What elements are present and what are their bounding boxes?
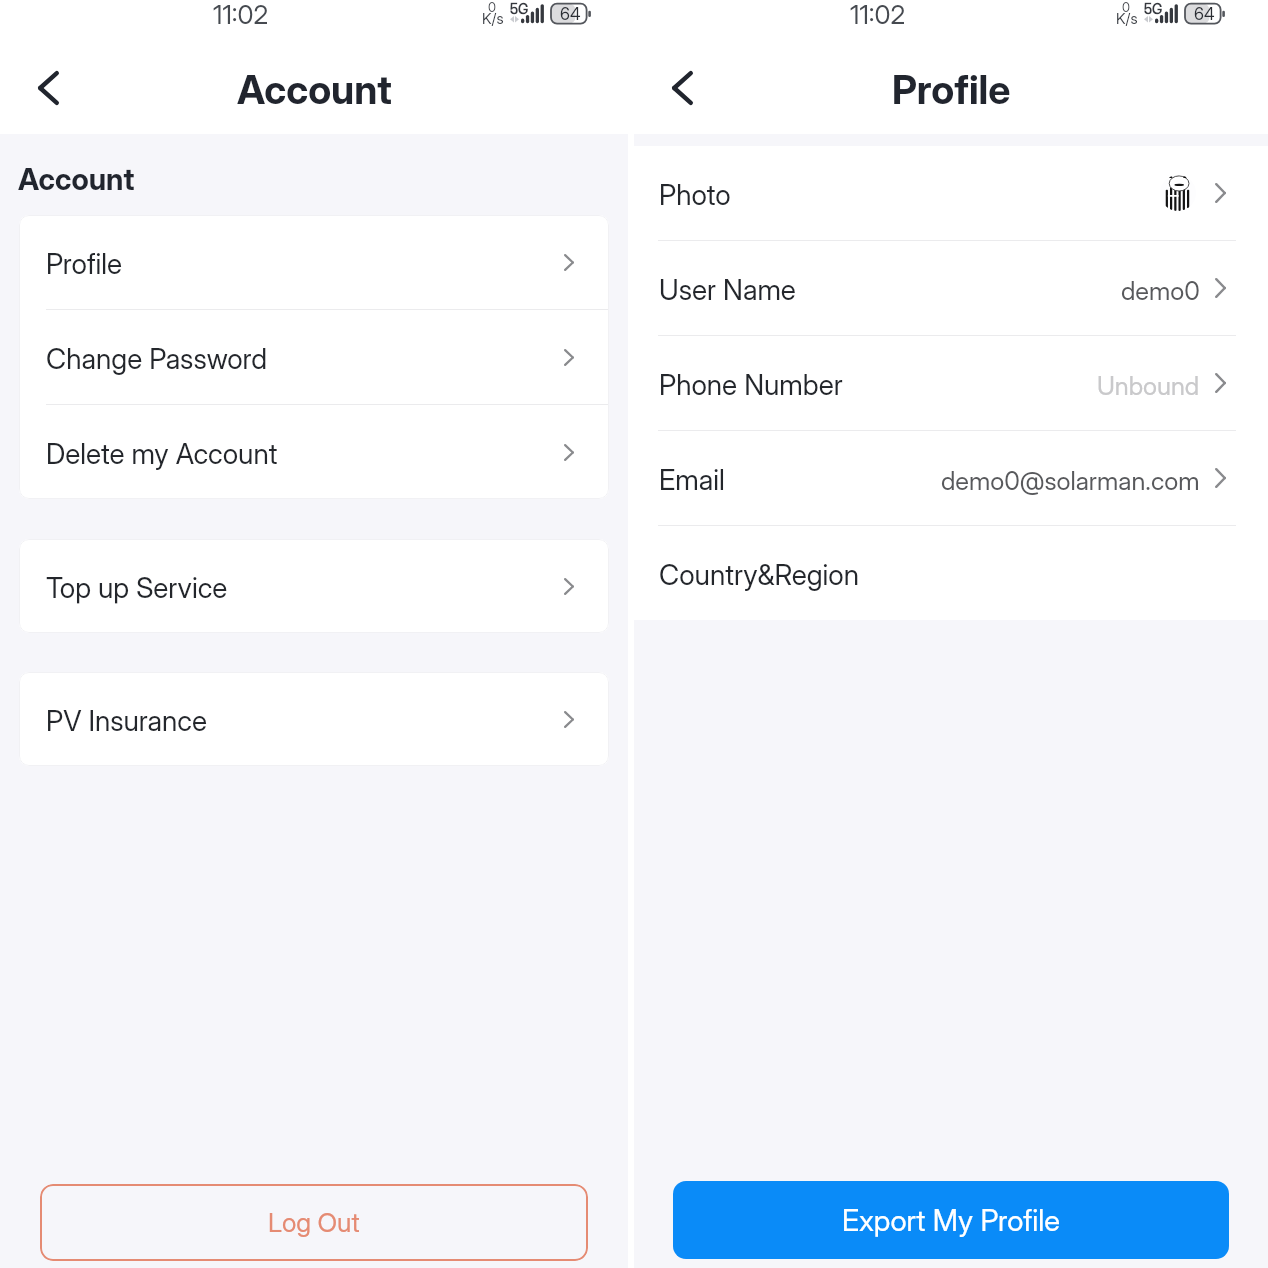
- staticText: 64: [560, 4, 581, 25]
- button[interactable]: Log Out: [40, 1184, 588, 1261]
- staticText: Phone Number: [659, 368, 843, 402]
- staticText: K/s: [1116, 9, 1138, 27]
- staticText: Log Out: [268, 1207, 360, 1239]
- button[interactable]: Country&Region: [634, 526, 1268, 620]
- button[interactable]: Export My Profile: [673, 1181, 1229, 1259]
- button[interactable]: Back: [18, 58, 78, 118]
- staticText: Country&Region: [659, 558, 859, 592]
- button[interactable]: Phone Number: [634, 336, 1268, 430]
- staticText: Change Password: [46, 342, 268, 376]
- staticText: Top up Service: [46, 571, 228, 605]
- staticText: 11:02: [213, 0, 269, 30]
- staticText: Photo: [659, 178, 731, 212]
- staticText: 11:02: [850, 0, 906, 30]
- staticText: 0: [488, 0, 496, 15]
- staticText: 64: [1194, 4, 1215, 25]
- button[interactable]: Delete my Account: [19, 405, 609, 499]
- staticText: 5G: [510, 0, 529, 17]
- staticText: Export My Profile: [842, 1203, 1061, 1238]
- staticText: Email: [659, 463, 725, 497]
- staticText: Profile: [46, 247, 123, 281]
- button[interactable]: Photo: [634, 146, 1268, 240]
- button[interactable]: Back: [652, 58, 712, 118]
- button[interactable]: Change Password: [19, 310, 609, 404]
- staticText: K/s: [482, 9, 504, 27]
- staticText: demo0: [1121, 275, 1200, 306]
- staticText: PV Insurance: [46, 704, 207, 738]
- button[interactable]: Profile: [19, 215, 609, 309]
- staticText: Profile: [892, 66, 1011, 114]
- button[interactable]: PV Insurance: [19, 672, 609, 766]
- staticText: Account: [237, 66, 392, 114]
- staticText: Account: [18, 161, 135, 197]
- button[interactable]: User Name: [634, 241, 1268, 335]
- staticText: 0: [1122, 0, 1130, 15]
- staticText: 5G: [1144, 0, 1163, 17]
- staticText: demo0@solarman.com: [941, 465, 1200, 496]
- staticText: User Name: [659, 273, 796, 307]
- button[interactable]: Email: [634, 431, 1268, 525]
- button[interactable]: Top up Service: [19, 539, 609, 633]
- staticText: Delete my Account: [46, 437, 278, 471]
- staticText: Unbound: [1097, 370, 1200, 401]
